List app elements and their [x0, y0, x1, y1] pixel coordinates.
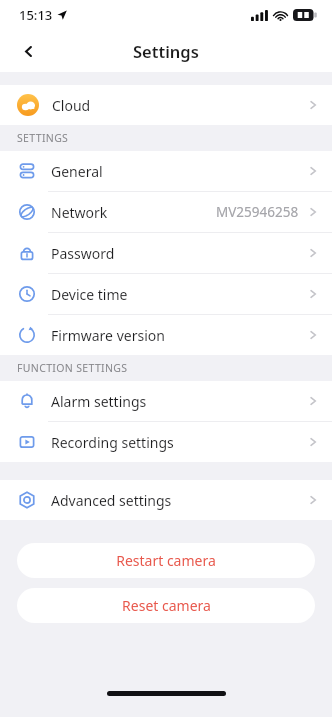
- button[interactable]: Password: [0, 233, 332, 273]
- staticText: Cloud: [52, 96, 91, 115]
- button[interactable]: Advanced settings: [0, 480, 332, 520]
- staticText: Advanced settings: [51, 491, 172, 510]
- staticText: Password: [51, 244, 115, 263]
- button[interactable]: Alarm settings: [0, 381, 332, 421]
- staticText: Device time: [51, 285, 128, 304]
- button[interactable]: Reset camera: [17, 588, 315, 623]
- button[interactable]: General: [0, 151, 332, 191]
- button[interactable]: Firmware version: [0, 315, 332, 355]
- staticText: 15:13: [19, 6, 53, 24]
- staticText: MV25946258: [216, 203, 299, 221]
- staticText: Settings: [133, 40, 199, 62]
- staticText: FUNCTION SETTINGS: [17, 361, 128, 375]
- staticText: General: [51, 162, 103, 181]
- button[interactable]: Cloud: [0, 85, 332, 125]
- button[interactable]: Back: [8, 31, 48, 71]
- button[interactable]: Network: [0, 192, 332, 232]
- staticText: Network: [51, 203, 108, 222]
- staticText: SETTINGS: [17, 131, 69, 145]
- button[interactable]: Recording settings: [0, 422, 332, 462]
- staticText: Alarm settings: [51, 392, 147, 411]
- staticText: Firmware version: [51, 326, 165, 345]
- button[interactable]: Device time: [0, 274, 332, 314]
- button[interactable]: Restart camera: [17, 543, 315, 578]
- staticText: Recording settings: [51, 433, 174, 452]
- staticText: Restart camera: [116, 551, 216, 570]
- staticText: Reset camera: [122, 596, 211, 615]
